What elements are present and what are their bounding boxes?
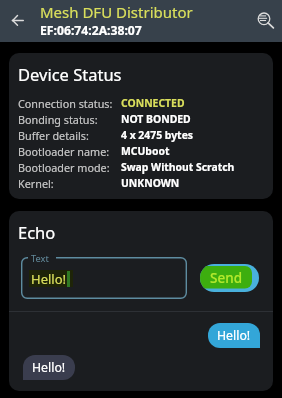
staticText: NOT BONDED	[121, 112, 191, 126]
staticText: Buffer details:	[18, 128, 121, 143]
button[interactable]: Send	[200, 264, 259, 292]
staticText: Hello!	[32, 359, 66, 376]
staticText: 4 x 2475 bytes	[121, 128, 194, 142]
staticText: Bonding status:	[18, 112, 121, 127]
staticText: Hello!	[217, 327, 251, 344]
staticText: Device Status	[18, 63, 122, 85]
staticText: CONNECTED	[121, 96, 185, 110]
staticText: EF:06:74:2A:38:07	[40, 22, 142, 39]
staticText: Text	[31, 252, 49, 265]
button[interactable]: Navigate up	[0, 0, 36, 42]
staticText: Echo	[18, 221, 56, 243]
staticText: Connection status:	[18, 96, 121, 111]
staticText: Bootloader name:	[18, 144, 121, 159]
button[interactable]: Text	[21, 257, 187, 299]
staticText: Send	[210, 269, 243, 287]
staticText: MCUboot	[121, 144, 170, 158]
staticText: Bootloader mode:	[18, 160, 121, 175]
staticText: Hello!	[31, 270, 67, 287]
staticText: UNKNOWN	[121, 176, 180, 190]
staticText: Mesh DFU Distributor	[40, 2, 193, 22]
button[interactable]: Hello!	[23, 355, 75, 380]
staticText: Kernel:	[18, 176, 121, 191]
button[interactable]: Hello!	[208, 323, 260, 348]
button[interactable]: Search log	[246, 0, 282, 42]
staticText: Swap Without Scratch	[121, 160, 235, 174]
